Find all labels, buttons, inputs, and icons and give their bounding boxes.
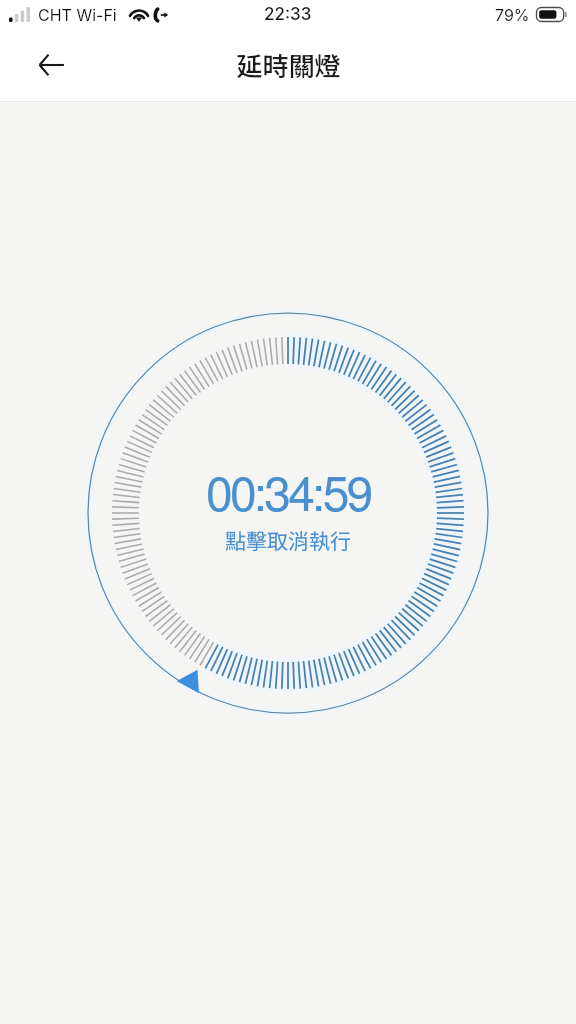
staticText: 點擊取消執行 — [225, 525, 351, 555]
button[interactable]: Back — [24, 38, 78, 92]
button[interactable]: 00:34:59 — [87, 312, 489, 714]
staticText: 延時關燈 — [236, 46, 341, 84]
staticText: 22:33 — [264, 4, 312, 25]
staticText: 79% — [495, 5, 530, 24]
staticText: CHT Wi-Fi — [38, 5, 117, 24]
staticText: 00:34:59 — [206, 456, 371, 525]
